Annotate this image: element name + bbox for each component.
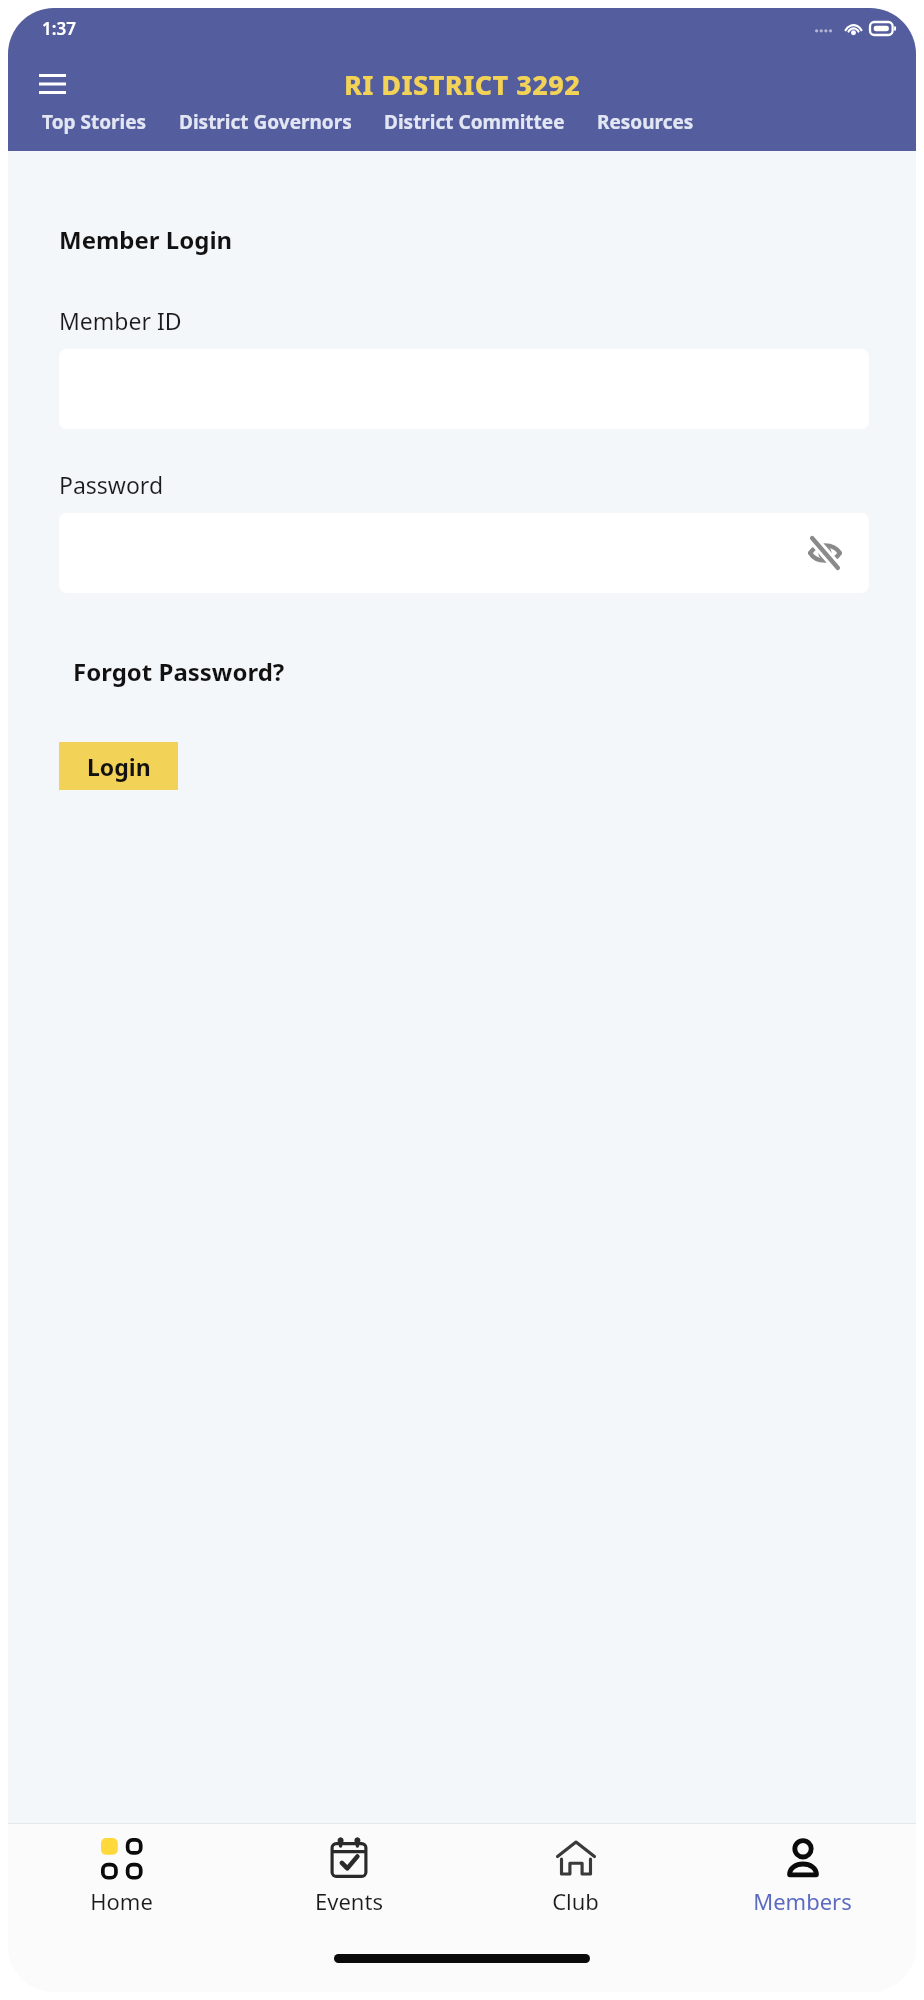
button[interactable]: Club [462, 1824, 689, 1936]
button[interactable]: Resources [581, 105, 710, 139]
button[interactable]: Show password [59, 513, 869, 593]
staticText: Login [87, 751, 151, 782]
staticText: Home [90, 1886, 153, 1916]
staticText: Events [315, 1886, 383, 1916]
button[interactable]: Forgot Password? [73, 651, 285, 692]
button[interactable]: District Committee [368, 105, 581, 139]
staticText: Resources [597, 109, 694, 135]
staticText: 1:37 [42, 17, 76, 40]
staticText: Password [59, 469, 164, 500]
button[interactable]: Events [235, 1824, 462, 1936]
button[interactable]: Login [59, 742, 178, 790]
staticText: District Committee [384, 109, 565, 135]
staticText: Member Login [59, 223, 233, 256]
staticText: RI DISTRICT 3292 [344, 66, 581, 103]
staticText: Member ID [59, 305, 182, 336]
staticText: Club [552, 1886, 599, 1916]
button[interactable]: Open navigation menu [30, 62, 74, 106]
staticText: Forgot Password? [73, 655, 285, 688]
staticText: Members [753, 1886, 852, 1916]
staticText: Top Stories [42, 109, 147, 135]
button[interactable]: Show password [801, 529, 849, 577]
button[interactable]: District Governors [163, 105, 368, 139]
button[interactable]: Top Stories [26, 105, 163, 139]
button[interactable]: Members [689, 1824, 916, 1936]
staticText: District Governors [179, 109, 352, 135]
button[interactable]: Home [8, 1824, 235, 1936]
